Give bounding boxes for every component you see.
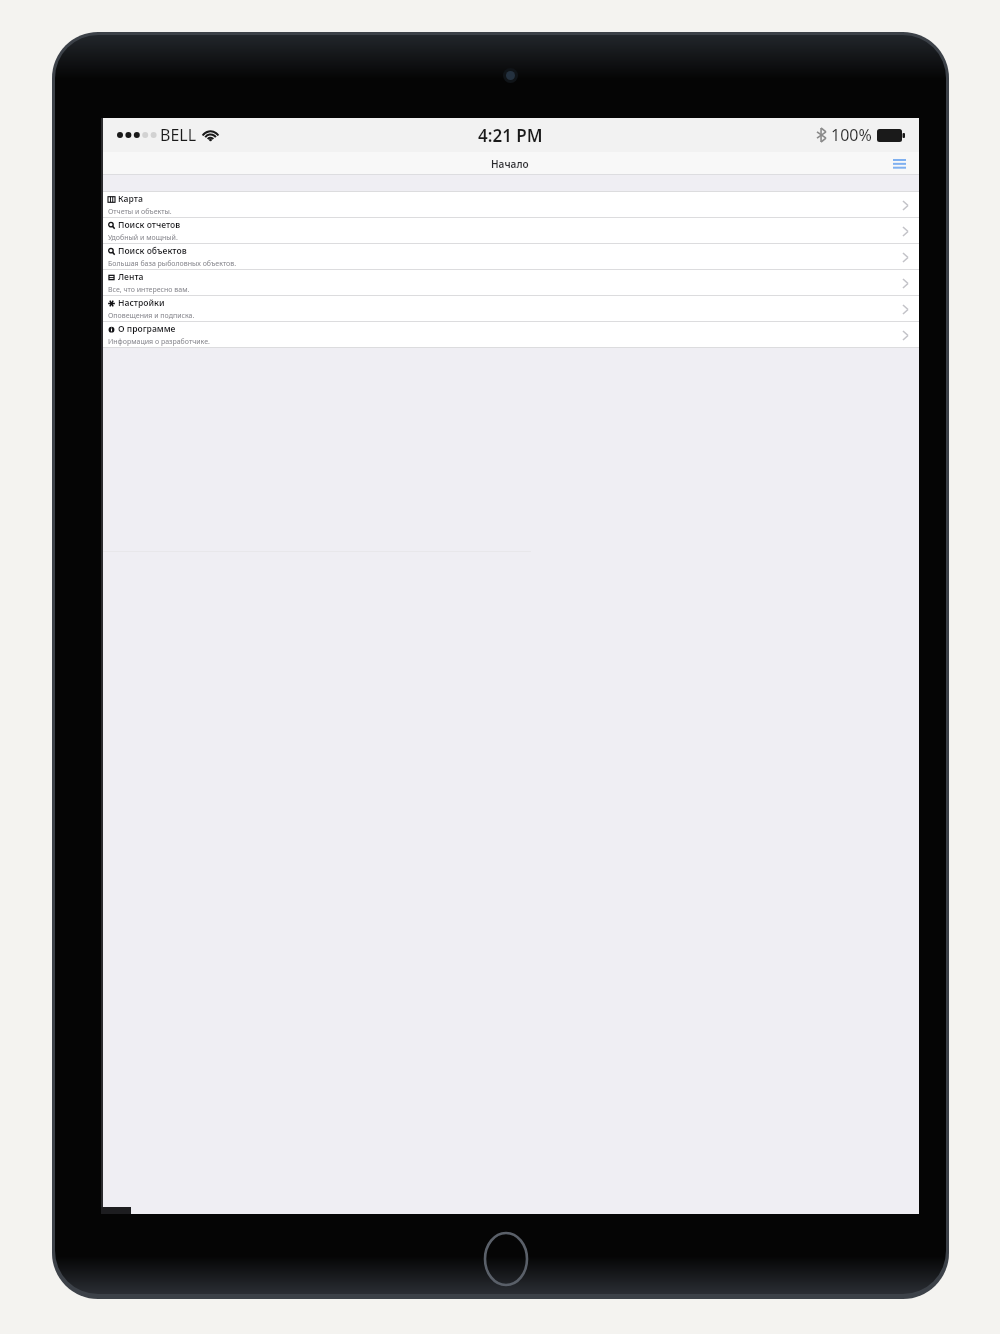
- staticText: Информация о разработчике.: [108, 337, 210, 347]
- staticText: Настройки: [118, 297, 165, 309]
- staticText: Оповещения и подписка.: [108, 311, 195, 321]
- staticText: 100%: [831, 124, 872, 146]
- staticText: О программе: [118, 323, 176, 335]
- staticText: Все, что интересно вам.: [108, 285, 190, 295]
- staticText: Удобный и мощный.: [108, 233, 178, 243]
- staticText: 4:21 PM: [478, 124, 543, 147]
- button[interactable]: Карта: [101, 192, 919, 218]
- staticText: Большая база рыболовных объектов.: [108, 259, 237, 269]
- staticText: Поиск отчетов: [118, 219, 181, 231]
- staticText: Поиск объектов: [118, 245, 187, 257]
- staticText: Лента: [118, 271, 144, 283]
- button[interactable]: О программе: [101, 322, 919, 348]
- staticText: Отчеты и объекты.: [108, 207, 172, 217]
- staticText: Карта: [118, 193, 143, 205]
- button[interactable]: Настройки: [101, 296, 919, 322]
- button[interactable]: Лента: [101, 270, 919, 296]
- button[interactable]: Menu: [888, 154, 910, 174]
- staticText: BELL: [160, 124, 197, 146]
- button[interactable]: Поиск отчетов: [101, 218, 919, 244]
- button[interactable]: Поиск объектов: [101, 244, 919, 270]
- staticText: Начало: [491, 157, 529, 171]
